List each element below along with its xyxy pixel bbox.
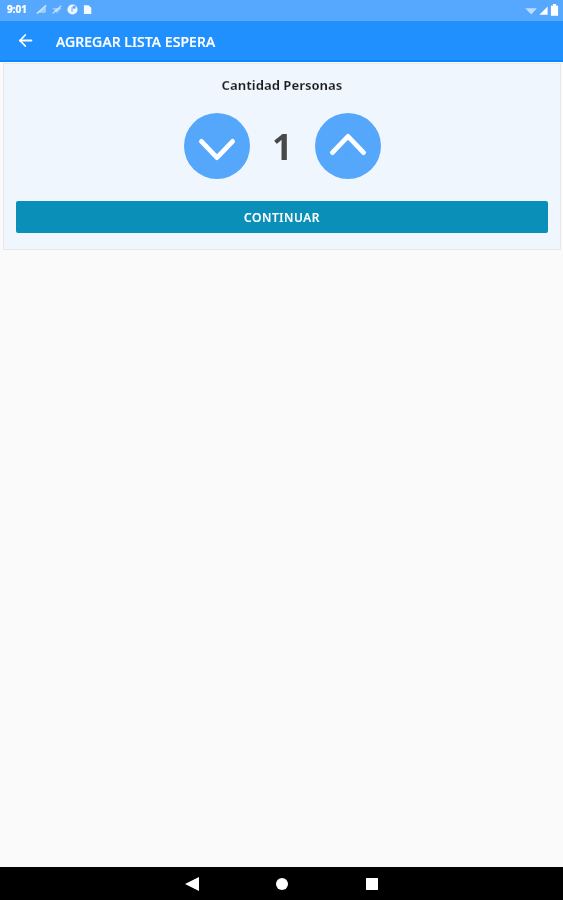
staticText: CONTINUAR xyxy=(244,209,320,225)
button[interactable]: CONTINUAR xyxy=(16,201,548,233)
button[interactable]: Home xyxy=(265,867,298,900)
button[interactable]: Decrease xyxy=(184,113,250,179)
button[interactable]: Back xyxy=(175,867,208,900)
button[interactable]: Increase xyxy=(315,113,381,179)
staticText: 9:01 xyxy=(7,2,27,16)
staticText: 1 xyxy=(272,122,293,171)
staticText: AGREGAR LISTA ESPERA xyxy=(56,32,216,51)
button[interactable]: Back xyxy=(5,22,45,62)
button[interactable]: Recent apps xyxy=(355,867,388,900)
staticText: Cantidad Personas xyxy=(4,76,560,94)
